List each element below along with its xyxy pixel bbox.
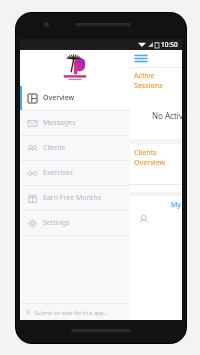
staticText: Clients	[43, 143, 66, 153]
button[interactable]: My	[130, 196, 182, 320]
staticText: Active Sessions	[134, 71, 182, 91]
staticText: No Active	[152, 110, 186, 121]
button[interactable]: Messages	[20, 111, 130, 135]
staticText: Messages	[43, 118, 76, 128]
staticText: Clients Overview	[134, 148, 182, 168]
button[interactable]: Exercises	[20, 161, 130, 185]
staticText: Settings	[43, 218, 70, 228]
staticText: Earn Free Months	[43, 193, 102, 203]
button[interactable]: Earn Free Months	[20, 186, 130, 210]
button[interactable]: Overview	[20, 86, 130, 110]
staticText: 10:50	[161, 40, 178, 49]
button[interactable]: Submit an idea for this app...	[20, 304, 130, 320]
button[interactable]: Clients	[20, 136, 130, 160]
button[interactable]: Settings	[20, 211, 130, 235]
staticText: Exercises	[43, 168, 73, 178]
button[interactable]: Active Sessions	[130, 68, 182, 139]
staticText: My	[171, 200, 181, 210]
staticText: Submit an idea for this app...	[34, 309, 109, 316]
button[interactable]: Open navigation menu	[135, 54, 147, 63]
staticText: Overview	[43, 93, 75, 103]
button[interactable]: Clients Overview	[130, 144, 182, 192]
